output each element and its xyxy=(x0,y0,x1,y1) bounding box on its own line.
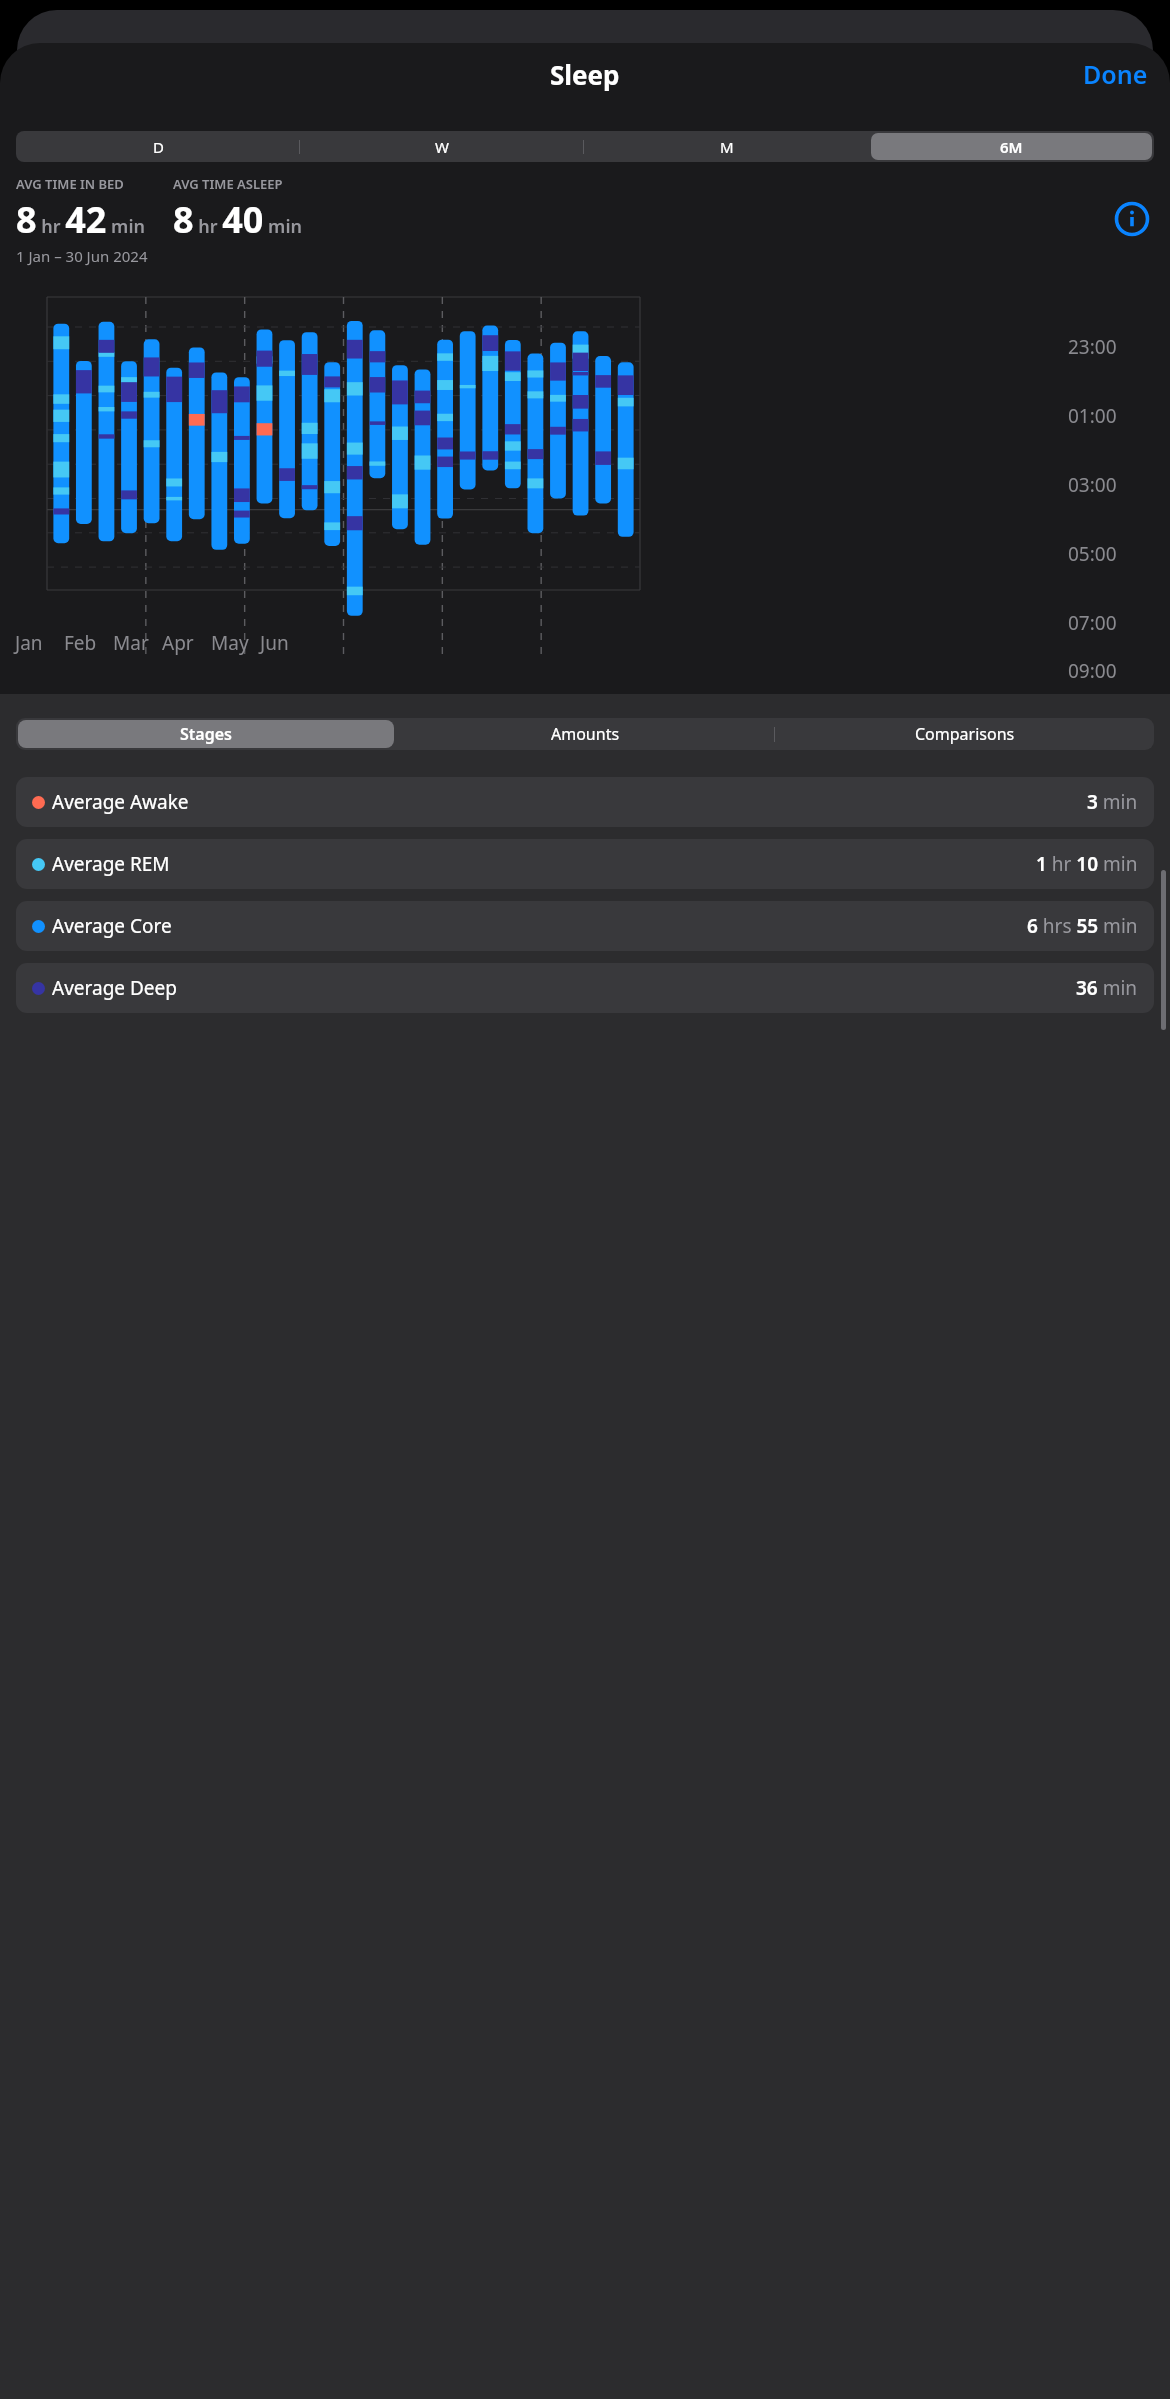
button[interactable]: Average Deep xyxy=(16,963,1154,1013)
staticText: Mar xyxy=(113,630,149,656)
staticText: W xyxy=(435,137,449,157)
button[interactable]: Comparisons xyxy=(777,720,1152,748)
staticText: AVG TIME IN BED xyxy=(16,175,124,193)
staticText: Stages xyxy=(180,723,232,745)
staticText: Sleep xyxy=(550,57,620,92)
staticText: 07:00 xyxy=(1068,610,1117,636)
staticText: 6M xyxy=(1000,137,1023,157)
button[interactable]: 6M xyxy=(871,133,1152,160)
button[interactable]: Average Core xyxy=(16,901,1154,951)
button[interactable]: Average REM xyxy=(16,839,1154,889)
staticText: M xyxy=(720,137,734,157)
staticText: Jun xyxy=(260,630,289,656)
staticText: Average REM xyxy=(52,851,170,877)
staticText: 8 hr 42 min xyxy=(16,195,145,244)
button[interactable]: Amounts xyxy=(398,720,773,748)
staticText: Amounts xyxy=(551,723,620,745)
staticText: D xyxy=(153,137,164,157)
staticText: Jan xyxy=(15,630,43,656)
staticText: 36 min xyxy=(1076,975,1138,1001)
staticText: Feb xyxy=(64,630,97,656)
staticText: 6 hrs 55 min xyxy=(1027,913,1138,939)
staticText: 05:00 xyxy=(1068,541,1117,567)
staticText: Comparisons xyxy=(915,723,1015,745)
staticText: 09:00 xyxy=(1068,658,1117,684)
button[interactable]: Average Awake xyxy=(16,777,1154,827)
button[interactable]: Information xyxy=(1110,197,1154,241)
staticText: 23:00 xyxy=(1068,334,1117,360)
staticText: AVG TIME ASLEEP xyxy=(173,175,283,193)
staticText: 1 Jan – 30 Jun 2024 xyxy=(16,246,148,266)
button[interactable]: Stages xyxy=(18,720,394,748)
staticText: Apr xyxy=(162,630,194,656)
staticText: 8 hr 40 min xyxy=(173,195,302,244)
staticText: 1 hr 10 min xyxy=(1036,851,1138,877)
staticText: 3 min xyxy=(1087,789,1138,815)
button[interactable]: W xyxy=(302,133,582,160)
staticText: 03:00 xyxy=(1068,472,1117,498)
staticText: Average Core xyxy=(52,913,172,939)
staticText: May xyxy=(211,630,249,656)
staticText: 01:00 xyxy=(1068,403,1117,429)
staticText: Done xyxy=(1083,57,1148,91)
staticText: Average Awake xyxy=(52,789,189,815)
button[interactable]: D xyxy=(18,133,298,160)
button[interactable]: Done xyxy=(1071,51,1160,97)
button[interactable]: M xyxy=(586,133,867,160)
staticText: Average Deep xyxy=(52,975,177,1001)
